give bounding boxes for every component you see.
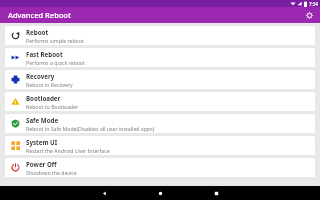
staticText: Reboot in Recovery <box>26 81 73 88</box>
staticText: Power Off <box>26 160 57 168</box>
staticText: Fast Reboot <box>26 50 63 58</box>
button[interactable]: Reboot <box>5 26 315 45</box>
staticText: System UI <box>26 138 58 146</box>
button[interactable]: Recent apps <box>205 186 227 200</box>
staticText: Safe Mode <box>26 116 59 124</box>
button[interactable]: Home <box>149 186 171 200</box>
button[interactable]: Bootloader <box>5 92 315 111</box>
button[interactable]: Settings <box>303 9 316 22</box>
button[interactable]: Recovery <box>5 70 315 89</box>
staticText: Reboot to Bootloader <box>26 103 79 110</box>
button[interactable]: Power Off <box>5 158 315 177</box>
staticText: Reboot in Safe Mode(Disables all user in… <box>26 125 155 132</box>
staticText: Recovery <box>26 72 55 80</box>
button[interactable]: Fast Reboot <box>5 48 315 67</box>
staticText: Advanced Reboot <box>8 10 71 20</box>
staticText: Restart the Android User Interface <box>26 147 110 154</box>
staticText: Performs a quick reboot <box>26 59 85 66</box>
staticText: Reboot <box>26 28 49 36</box>
button[interactable]: System UI <box>5 136 315 155</box>
staticText: Bootloader <box>26 94 61 102</box>
staticText: 7:34 <box>309 1 318 7</box>
staticText: Performs simple reboot <box>26 37 84 44</box>
button[interactable]: Back <box>93 186 115 200</box>
button[interactable]: Safe Mode <box>5 114 315 133</box>
staticText: Shutdown the device <box>26 169 77 176</box>
